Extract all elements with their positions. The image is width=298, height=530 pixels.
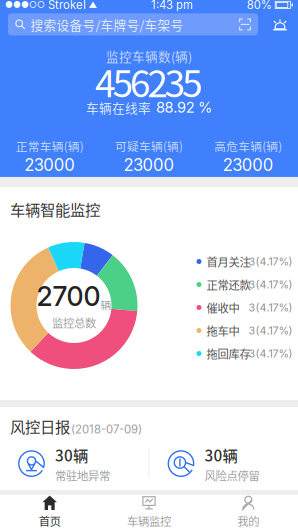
staticText: 30辆 xyxy=(55,444,88,466)
staticText: 80% xyxy=(247,0,272,12)
button[interactable]: 30辆 xyxy=(0,446,148,482)
staticText: 23000 xyxy=(123,155,174,175)
button[interactable]: 首页 xyxy=(0,494,99,530)
button[interactable]: 我的 xyxy=(199,494,298,530)
staticText: 3(4.17%) xyxy=(248,301,292,314)
staticText: 23000 xyxy=(223,155,274,175)
staticText: 辆 xyxy=(100,297,111,312)
staticText: 首月关注 xyxy=(206,253,250,270)
staticText: 3(4.17%) xyxy=(248,347,292,360)
staticText: 车辆监控 xyxy=(127,512,171,529)
staticText: 常驻地异常 xyxy=(55,467,110,483)
staticText: 我的 xyxy=(237,512,259,529)
staticText: 搜索设备号/车牌号/车架号 xyxy=(30,15,183,33)
staticText: 1:43 pm xyxy=(151,0,193,12)
button[interactable]: 扫一扫 xyxy=(232,13,258,35)
staticText: 风控日报 xyxy=(10,415,70,437)
staticText: 30辆 xyxy=(204,444,237,466)
staticText: 车辆在线率 xyxy=(86,98,151,116)
button[interactable]: 报警 xyxy=(266,13,294,35)
staticText: 可疑车辆(辆) xyxy=(115,137,183,154)
button[interactable]: 30辆 xyxy=(149,446,298,482)
staticText: 23000 xyxy=(24,155,75,175)
staticText: 车辆智能监控 xyxy=(10,198,100,220)
staticText: 拖回库存 xyxy=(206,345,250,362)
staticText: (2018-07-09) xyxy=(71,422,142,436)
staticText: 3(4.17%) xyxy=(248,255,292,268)
staticText: 正常车辆(辆) xyxy=(16,137,84,154)
staticText: 88.92 % xyxy=(156,98,212,116)
staticText: 高危车辆(辆) xyxy=(214,137,282,154)
staticText: 3(4.17%) xyxy=(248,324,292,337)
staticText: 456235 xyxy=(95,54,203,108)
staticText: 监控车辆数(辆) xyxy=(106,47,192,65)
staticText: 监控总数 xyxy=(52,314,96,331)
staticText: 拖车中 xyxy=(206,322,239,339)
staticText: 2700 xyxy=(36,280,100,312)
staticText: 3(4.17%) xyxy=(248,278,292,291)
staticText: 催收中 xyxy=(206,299,239,316)
staticText: StrokeI xyxy=(45,0,86,12)
staticText: 风险点停留 xyxy=(204,467,259,483)
staticText: 首页 xyxy=(39,512,61,529)
staticText: ●●●○○ xyxy=(5,0,45,10)
button[interactable]: 车辆监控 xyxy=(99,494,199,530)
staticText: 正常还款 xyxy=(206,276,250,293)
